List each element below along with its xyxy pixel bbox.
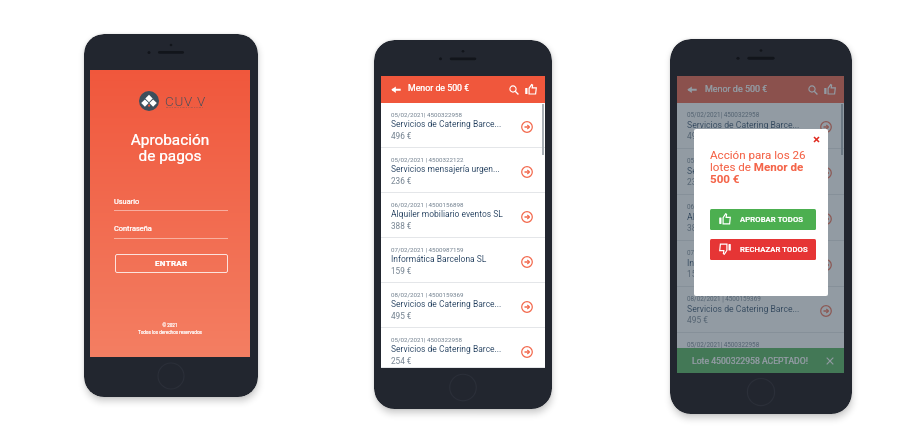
button[interactable]: Open lote [820, 305, 832, 317]
staticText: 496 € [391, 131, 412, 141]
staticText: 236 € [391, 176, 412, 186]
button[interactable]: Open lote [820, 167, 832, 179]
button[interactable]: Open lote [521, 166, 533, 178]
button[interactable]: Dismiss [826, 357, 834, 365]
button[interactable]: Open lote [521, 256, 533, 268]
button[interactable]: Search [506, 82, 520, 96]
staticText: Informática Barcelona SL [687, 258, 817, 268]
staticText: Menor de 500 € [408, 83, 470, 93]
staticText: Usuario [114, 197, 140, 206]
staticText: 05/02/2021| 4500322958 [391, 111, 462, 118]
staticText: 08/02/2021 | 4500159369 [687, 295, 761, 302]
button[interactable]: 07/02/2021 | 4500987159 [677, 241, 844, 287]
staticText: Menor de 500 € [705, 84, 768, 95]
staticText: 05/02/2021| 4500322958 [687, 341, 760, 348]
staticText: Servicios de Catering Barce... [391, 119, 519, 129]
button[interactable]: Open lote [820, 259, 832, 271]
staticText: 05/02/2021| 4500322958 [687, 111, 760, 118]
staticText: 495 € [391, 311, 412, 321]
staticText: 05/02/2021| 4500322958 [391, 336, 462, 343]
button[interactable]: 05/02/2021| 4500322958 [381, 103, 545, 148]
button[interactable]: Search [805, 82, 819, 96]
staticText: 08/02/2021 | 4500159369 [391, 291, 464, 298]
button[interactable]: Close dialog [809, 132, 823, 146]
staticText: 254 € [687, 361, 708, 371]
staticText: Servicios de Catering Barce... [391, 344, 519, 354]
staticText: 388 € [687, 223, 708, 233]
button[interactable]: Open lote [521, 301, 533, 313]
button[interactable]: ENTRAR [115, 254, 228, 273]
staticText: 495 € [687, 315, 708, 325]
staticText: 159 € [687, 269, 708, 279]
button[interactable]: 06/02/2021 | 4500156898 [381, 193, 545, 238]
button[interactable]: Open lote [521, 346, 533, 358]
staticText: Servicios mensajería urgen... [687, 166, 817, 176]
staticText: Alquiler mobiliario eventos SL [687, 212, 817, 222]
button[interactable]: RECHAZAR TODOS [710, 239, 816, 260]
button[interactable]: Approve all [525, 84, 537, 95]
staticText: APROBAR TODOS [740, 215, 804, 224]
staticText: 496 € [687, 131, 708, 141]
staticText: Aprobación de pagos [90, 131, 250, 165]
staticText: 06/02/2021 | 4500156898 [687, 203, 761, 210]
staticText: Servicios de Catering Barce... [687, 304, 817, 314]
staticText: 07/02/2021 | 4500987159 [687, 249, 761, 256]
staticText: 254 € [391, 356, 412, 366]
staticText: © 2021 Todos los derechos reservados [90, 323, 250, 335]
staticText: 05/02/2021 | 4500322122 [391, 156, 464, 163]
staticText: Acción para los 26 lotes de Menor de 500… [710, 148, 806, 186]
button[interactable]: Open lote [820, 351, 832, 363]
button[interactable]: Open lote [820, 213, 832, 225]
staticText: Alquiler mobiliario eventos SL [391, 209, 519, 219]
staticText: 07/02/2021 | 4500987159 [391, 246, 464, 253]
staticText: 05/02/2021 | 4500322122 [687, 157, 761, 164]
button[interactable]: Approve all [824, 84, 836, 95]
staticText: Servicios de Catering Barce... [687, 120, 817, 130]
button[interactable]: 05/02/2021 | 4500322122 [381, 148, 545, 193]
button[interactable]: 05/02/2021| 4500322958 [677, 333, 844, 373]
staticText: Servicios de Catering Barce... [687, 350, 817, 360]
button[interactable]: APROBAR TODOS [710, 209, 816, 230]
button[interactable]: 07/02/2021 | 4500987159 [381, 238, 545, 283]
button[interactable]: Back [386, 82, 406, 97]
staticText: Contraseña [114, 224, 152, 233]
staticText: CUV V [165, 94, 207, 110]
staticText: 236 € [687, 177, 708, 187]
button[interactable]: 08/02/2021 | 4500159369 [381, 283, 545, 328]
staticText: 06/02/2021 | 4500156898 [391, 201, 464, 208]
staticText: Informática Barcelona SL [391, 254, 519, 264]
button[interactable]: 05/02/2021| 4500322958 [381, 328, 545, 368]
staticText: RECHAZAR TODOS [740, 245, 808, 254]
staticText: Lote 4500322958 ACEPTADO! [692, 356, 808, 366]
button[interactable]: Back [682, 82, 702, 97]
staticText: Servicios mensajería urgen... [391, 164, 519, 174]
staticText: Servicios de Catering Barce... [391, 299, 519, 309]
button[interactable]: 06/02/2021 | 4500156898 [677, 195, 844, 241]
button[interactable]: Open lote [820, 121, 832, 133]
staticText: 159 € [391, 266, 412, 276]
staticText: 388 € [391, 221, 412, 231]
staticText: ENTRAR [155, 259, 188, 268]
button[interactable]: Open lote [521, 211, 533, 223]
button[interactable]: 05/02/2021| 4500322958 [677, 103, 844, 149]
button[interactable]: 05/02/2021 | 4500322122 [677, 149, 844, 195]
button[interactable]: 08/02/2021 | 4500159369 [677, 287, 844, 333]
button[interactable]: Open lote [521, 121, 533, 133]
